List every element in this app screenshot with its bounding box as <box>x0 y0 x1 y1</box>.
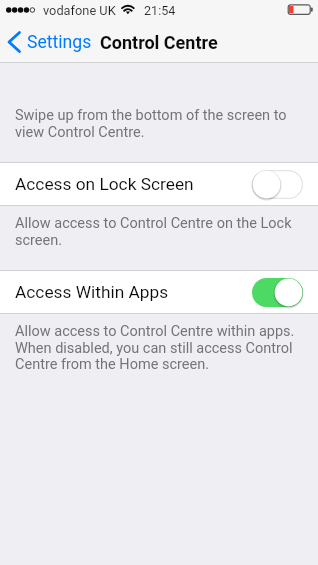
staticText: vodafone UK <box>43 3 116 18</box>
staticText: Access Within Apps <box>15 282 169 302</box>
staticText: 21:54 <box>144 3 176 18</box>
button[interactable]: Settings <box>6 22 92 62</box>
staticText: Allow access to Control Centre within ap… <box>15 323 303 372</box>
staticText: Control Centre <box>100 32 218 53</box>
staticText: Settings <box>27 32 92 53</box>
staticText: Allow access to Control Centre on the Lo… <box>15 215 303 248</box>
button[interactable]: Access Within Apps <box>0 270 318 314</box>
button[interactable]: Access on Lock Screen <box>0 162 318 206</box>
button[interactable]: Toggle on <box>252 278 303 307</box>
staticText: Swipe up from the bottom of the screen t… <box>15 107 303 140</box>
staticText: Access on Lock Screen <box>15 174 194 194</box>
button[interactable]: Toggle off <box>252 170 303 199</box>
